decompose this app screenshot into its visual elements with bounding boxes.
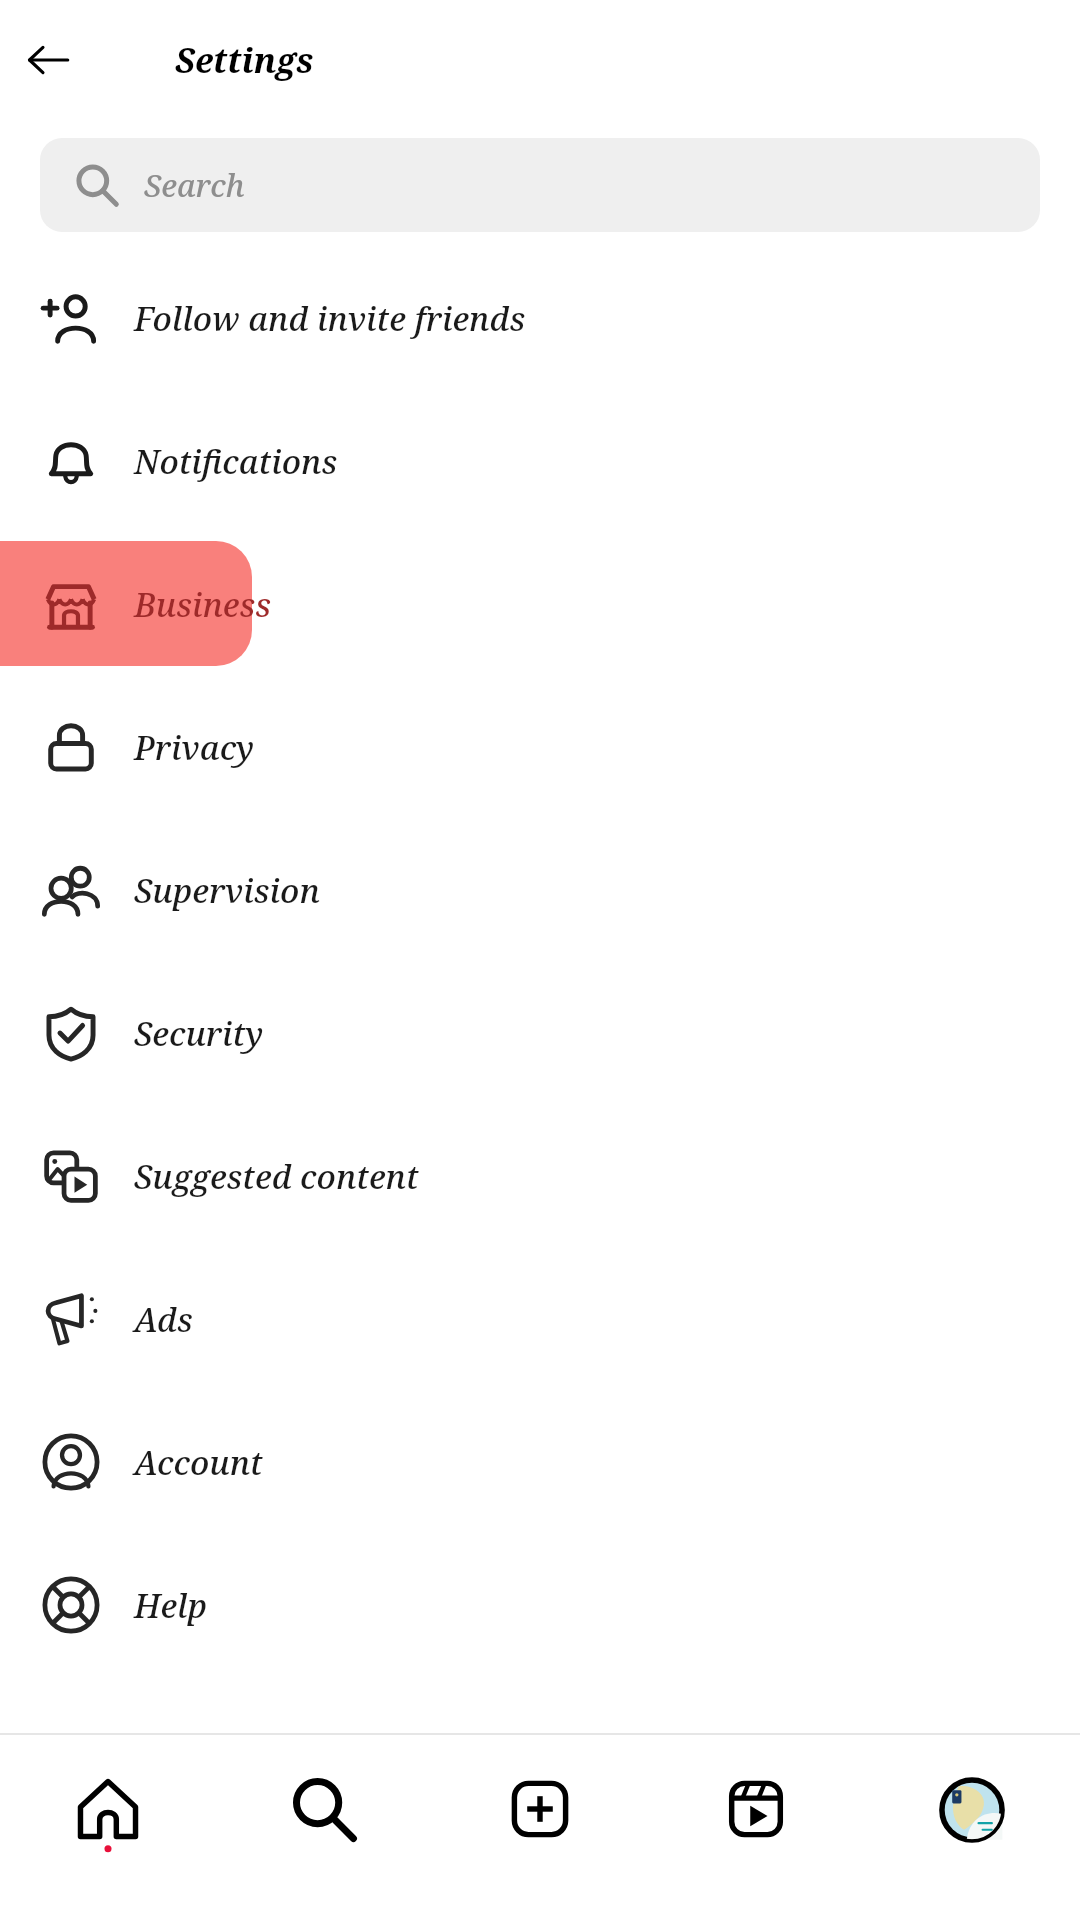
staticText: Security — [134, 1011, 264, 1056]
button[interactable]: Privacy — [0, 675, 1080, 818]
button[interactable]: Supervision — [0, 818, 1080, 961]
staticText: Business — [134, 582, 272, 627]
button[interactable]: Search — [216, 1735, 432, 1920]
button[interactable]: Account — [0, 1390, 1080, 1533]
button[interactable]: Back — [12, 24, 84, 96]
button[interactable]: Help — [0, 1533, 1080, 1676]
button[interactable]: Security — [0, 961, 1080, 1104]
staticText: Supervision — [134, 868, 320, 913]
staticText: Suggested content — [134, 1154, 419, 1199]
staticText: Privacy — [134, 725, 255, 770]
button[interactable]: Follow and invite friends — [0, 246, 1080, 389]
staticText: Ads — [134, 1297, 193, 1342]
button[interactable]: Search — [40, 138, 1040, 232]
button[interactable]: Business — [0, 532, 1080, 675]
button[interactable]: Notifications — [0, 389, 1080, 532]
button[interactable]: Profile — [864, 1735, 1080, 1920]
button[interactable]: Create — [432, 1735, 648, 1920]
staticText: Help — [134, 1583, 208, 1628]
button[interactable]: Reels — [648, 1735, 864, 1920]
button[interactable]: Suggested content — [0, 1104, 1080, 1247]
button[interactable]: Home — [0, 1735, 216, 1920]
staticText: Search — [144, 164, 245, 206]
staticText: Follow and invite friends — [134, 296, 526, 341]
button[interactable]: Ads — [0, 1247, 1080, 1390]
staticText: Settings — [175, 37, 314, 83]
staticText: Account — [134, 1440, 263, 1485]
staticText: Notifications — [134, 439, 338, 484]
